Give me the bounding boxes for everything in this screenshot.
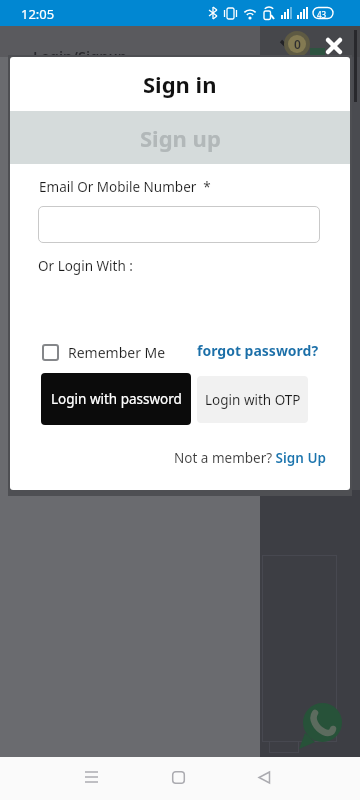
staticText: Login/Signup (33, 46, 127, 66)
button[interactable] (38, 206, 320, 243)
staticText: Login with password (51, 390, 182, 408)
staticText: Login with OTP (205, 391, 301, 409)
staticText: 43 (317, 9, 327, 20)
button[interactable] (42, 344, 59, 361)
button[interactable] (85, 771, 98, 783)
staticText: 12:05 (21, 5, 55, 23)
button[interactable]: Login with password (41, 373, 191, 425)
button[interactable]: Sign in (10, 57, 350, 111)
staticText: Email Or Mobile Number * (39, 178, 211, 196)
button[interactable] (172, 771, 185, 784)
staticText: Sign in (143, 69, 217, 99)
button[interactable] (327, 39, 341, 53)
button[interactable]: forgot password? (197, 341, 319, 360)
button[interactable] (303, 703, 342, 742)
button[interactable]: Not a member? Sign Up (174, 449, 326, 467)
staticText: Sign up (140, 123, 221, 153)
staticText: Or Login With : (38, 257, 133, 275)
button[interactable]: Login with OTP (197, 376, 308, 423)
button[interactable] (257, 771, 271, 784)
button[interactable]: Sign up (10, 111, 350, 164)
staticText: 0 (294, 36, 301, 52)
staticText: Remember Me (68, 343, 166, 362)
